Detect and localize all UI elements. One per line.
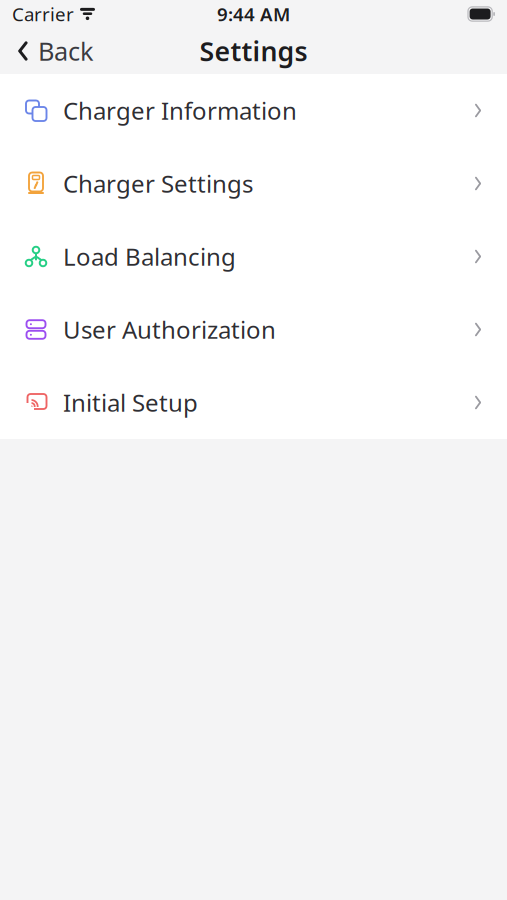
staticText: Load Balancing bbox=[63, 241, 236, 272]
staticText: Carrier bbox=[12, 2, 74, 26]
staticText: Settings bbox=[199, 33, 307, 69]
staticText: Back bbox=[38, 34, 94, 68]
button[interactable]: Charger Information bbox=[0, 74, 507, 147]
staticText: Charger Information bbox=[63, 95, 297, 126]
button[interactable]: User Authorization bbox=[0, 293, 507, 366]
button[interactable]: Charger Settings bbox=[0, 147, 507, 220]
button[interactable]: Load Balancing bbox=[0, 220, 507, 293]
button[interactable]: Initial Setup bbox=[0, 366, 507, 439]
staticText: 9:44 AM bbox=[217, 2, 290, 26]
button[interactable]: Back bbox=[0, 26, 110, 76]
staticText: Initial Setup bbox=[63, 387, 198, 418]
staticText: Charger Settings bbox=[63, 168, 253, 199]
staticText: User Authorization bbox=[63, 314, 276, 345]
